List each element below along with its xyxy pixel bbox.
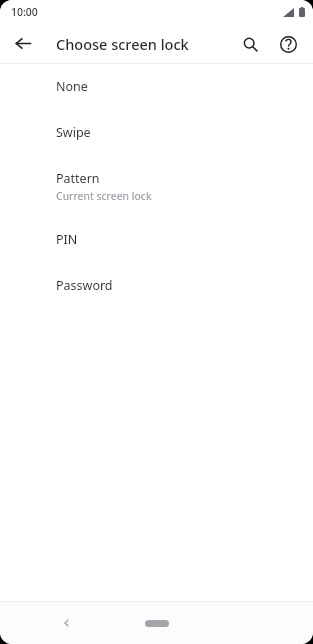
staticText: None <box>56 78 88 95</box>
button[interactable]: None <box>0 64 313 95</box>
button[interactable]: Swipe <box>0 95 313 141</box>
staticText: Choose screen lock <box>56 34 189 54</box>
staticText: Password <box>56 277 113 294</box>
button[interactable]: Password <box>0 248 313 294</box>
staticText: Swipe <box>56 124 91 141</box>
button[interactable]: PIN <box>0 203 313 248</box>
staticText: Current screen lock <box>56 189 152 203</box>
button[interactable]: Home <box>135 612 179 634</box>
button[interactable]: Search <box>235 29 265 59</box>
button[interactable]: Help <box>273 29 303 59</box>
button[interactable]: Back <box>54 610 80 636</box>
button[interactable]: Pattern <box>0 141 313 203</box>
staticText: PIN <box>56 231 78 248</box>
staticText: Pattern <box>56 170 100 187</box>
button[interactable]: Navigate up <box>9 29 38 58</box>
staticText: 10:00 <box>11 5 38 19</box>
